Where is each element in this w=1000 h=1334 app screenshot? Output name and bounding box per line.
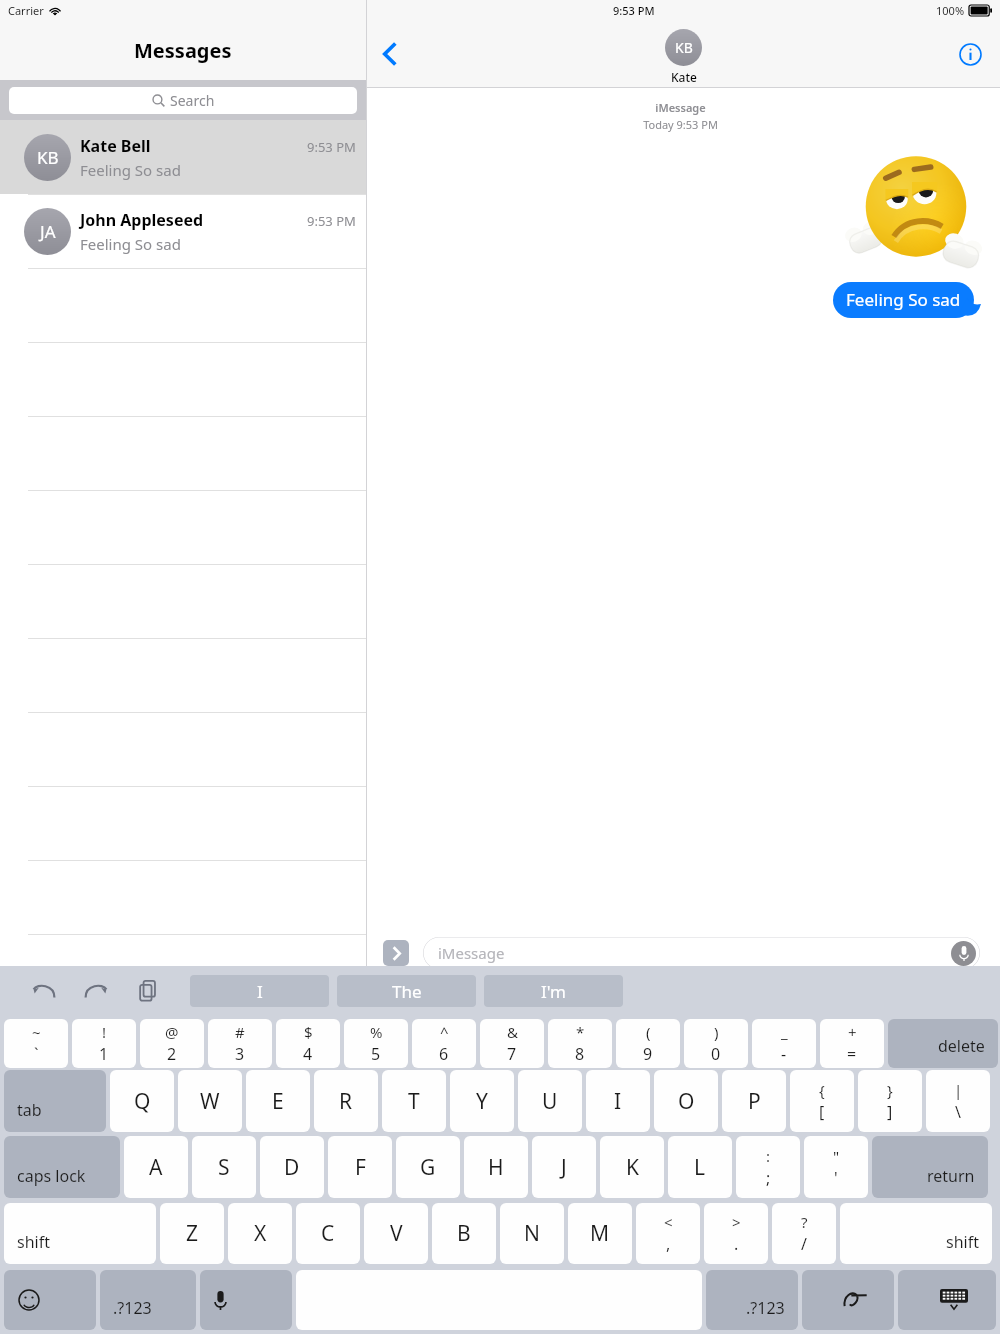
button[interactable]: N bbox=[500, 1203, 564, 1264]
button[interactable]: I bbox=[190, 975, 329, 1007]
button[interactable]: * bbox=[548, 1019, 612, 1068]
staticText: iMessage bbox=[438, 943, 505, 963]
button[interactable]: U bbox=[518, 1070, 582, 1132]
staticText: 3 bbox=[235, 1043, 245, 1065]
button[interactable]: KB bbox=[665, 29, 702, 85]
staticText: 9:53 PM bbox=[307, 212, 356, 230]
button[interactable]: G bbox=[396, 1136, 460, 1198]
staticText: John Appleseed bbox=[80, 209, 204, 231]
staticText: # bbox=[235, 1022, 245, 1042]
button[interactable]: B bbox=[432, 1203, 496, 1264]
button[interactable]: Apps bbox=[383, 940, 409, 966]
button[interactable]: T bbox=[382, 1070, 446, 1132]
staticText: ! bbox=[102, 1022, 107, 1042]
button[interactable]: _ bbox=[752, 1019, 816, 1068]
button[interactable]: < bbox=[636, 1203, 700, 1264]
staticText: M bbox=[590, 1219, 610, 1248]
button[interactable]: & bbox=[480, 1019, 544, 1068]
button[interactable]: S bbox=[192, 1136, 256, 1198]
button[interactable]: Y bbox=[450, 1070, 514, 1132]
button[interactable]: .?123 bbox=[100, 1270, 196, 1330]
staticText: U bbox=[542, 1087, 558, 1116]
staticText: Q bbox=[134, 1087, 151, 1116]
button[interactable]: Back bbox=[367, 31, 413, 77]
button[interactable]: shift bbox=[840, 1203, 992, 1264]
button[interactable]: M bbox=[568, 1203, 632, 1264]
staticText: V bbox=[390, 1219, 403, 1248]
button[interactable]: @ bbox=[140, 1019, 204, 1068]
button[interactable]: R bbox=[314, 1070, 378, 1132]
button[interactable]: $ bbox=[276, 1019, 340, 1068]
button[interactable]: Hide keyboard bbox=[898, 1270, 996, 1330]
button[interactable]: Handwriting bbox=[802, 1270, 894, 1330]
button[interactable]: J bbox=[532, 1136, 596, 1198]
button[interactable]: Undo bbox=[22, 969, 66, 1013]
button[interactable]: Details bbox=[950, 34, 990, 74]
button[interactable]: D bbox=[260, 1136, 324, 1198]
button[interactable]: > bbox=[704, 1203, 768, 1264]
button[interactable]: V bbox=[364, 1203, 428, 1264]
button[interactable]: W bbox=[178, 1070, 242, 1132]
button[interactable]: Emoji bbox=[4, 1270, 96, 1330]
button[interactable]: ? bbox=[772, 1203, 836, 1264]
staticText: 6 bbox=[439, 1043, 449, 1065]
button[interactable]: # bbox=[208, 1019, 272, 1068]
button[interactable]: JA bbox=[0, 194, 366, 268]
button[interactable]: ( bbox=[616, 1019, 680, 1068]
staticText: 2 bbox=[167, 1043, 177, 1065]
staticText: C bbox=[321, 1219, 335, 1248]
button[interactable]: | bbox=[926, 1070, 990, 1132]
staticText: P bbox=[748, 1087, 761, 1116]
button[interactable]: Z bbox=[160, 1203, 224, 1264]
button[interactable]: " bbox=[804, 1136, 868, 1198]
button[interactable]: % bbox=[344, 1019, 408, 1068]
button[interactable]: H bbox=[464, 1136, 528, 1198]
button[interactable]: shift bbox=[4, 1203, 156, 1264]
button[interactable]: E bbox=[246, 1070, 310, 1132]
staticText: 4 bbox=[303, 1043, 313, 1065]
other: Hide keyboard bbox=[940, 1289, 968, 1311]
button[interactable]: + bbox=[820, 1019, 884, 1068]
button[interactable]: Search bbox=[9, 87, 357, 114]
button[interactable]: O bbox=[654, 1070, 718, 1132]
button[interactable]: iMessage bbox=[423, 937, 980, 969]
button[interactable]: ^ bbox=[412, 1019, 476, 1068]
button[interactable]: Redo bbox=[74, 969, 118, 1013]
button[interactable]: P bbox=[722, 1070, 786, 1132]
staticText: ~ bbox=[32, 1022, 41, 1042]
button[interactable]: X bbox=[228, 1203, 292, 1264]
button[interactable]: The bbox=[337, 975, 476, 1007]
button[interactable]: return bbox=[872, 1136, 988, 1198]
staticText: { bbox=[819, 1080, 825, 1100]
button[interactable]: F bbox=[328, 1136, 392, 1198]
button[interactable]: Q bbox=[110, 1070, 174, 1132]
button[interactable]: { bbox=[790, 1070, 854, 1132]
button[interactable]: .?123 bbox=[706, 1270, 798, 1330]
button[interactable]: Dictate bbox=[200, 1270, 292, 1330]
button[interactable]: A bbox=[124, 1136, 188, 1198]
button[interactable]: K bbox=[600, 1136, 664, 1198]
staticText: A bbox=[149, 1153, 163, 1182]
button[interactable]: I'm bbox=[484, 975, 623, 1007]
staticText: \ bbox=[955, 1101, 961, 1123]
button[interactable]: caps lock bbox=[4, 1136, 120, 1198]
button[interactable]: I bbox=[586, 1070, 650, 1132]
staticText: caps lock bbox=[17, 1165, 86, 1187]
staticText: [ bbox=[819, 1101, 825, 1123]
button[interactable]: : bbox=[736, 1136, 800, 1198]
staticText: K bbox=[626, 1153, 639, 1182]
button[interactable]: tab bbox=[4, 1070, 106, 1132]
button[interactable]: KB bbox=[0, 120, 366, 194]
staticText: R bbox=[339, 1087, 353, 1116]
button[interactable]: delete bbox=[888, 1019, 998, 1068]
button[interactable]: ! bbox=[72, 1019, 136, 1068]
button[interactable]: ~ bbox=[4, 1019, 68, 1068]
staticText: " bbox=[833, 1146, 840, 1166]
button[interactable]: C bbox=[296, 1203, 360, 1264]
button[interactable]: Paste bbox=[126, 969, 170, 1013]
button[interactable]: } bbox=[858, 1070, 922, 1132]
button[interactable]: Dictate bbox=[951, 941, 976, 966]
button[interactable]: L bbox=[668, 1136, 732, 1198]
button[interactable]: ) bbox=[684, 1019, 748, 1068]
